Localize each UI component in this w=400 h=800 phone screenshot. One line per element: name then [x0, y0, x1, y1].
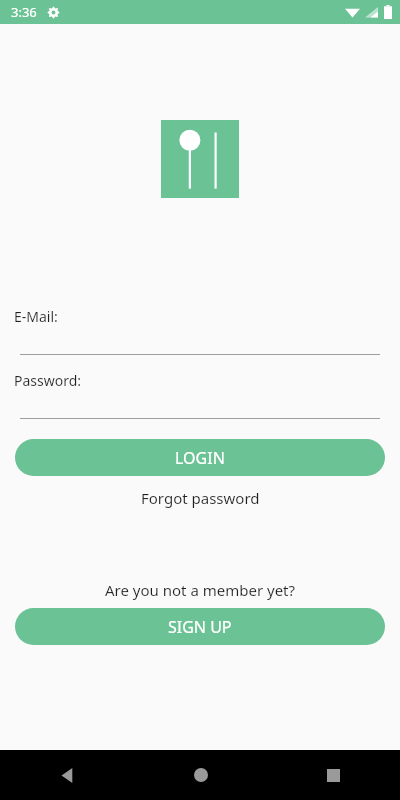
button[interactable]: E-Mail:: [0, 307, 400, 355]
button[interactable]: LOGIN: [15, 439, 385, 476]
button[interactable]: Password:: [0, 371, 400, 419]
staticText: LOGIN: [175, 447, 225, 469]
button[interactable]: Back: [0, 750, 134, 800]
staticText: SIGN UP: [168, 616, 232, 638]
staticText: Are you not a member yet?: [105, 580, 296, 600]
button[interactable]: Forgot password: [0, 486, 400, 510]
staticText: Password:: [14, 371, 82, 390]
staticText: Forgot password: [141, 488, 260, 508]
staticText: 3:36: [11, 3, 37, 21]
button[interactable]: SIGN UP: [15, 608, 385, 645]
button[interactable]: Home: [134, 750, 267, 800]
button[interactable]: Recent apps: [267, 750, 400, 800]
staticText: E-Mail:: [14, 307, 58, 326]
